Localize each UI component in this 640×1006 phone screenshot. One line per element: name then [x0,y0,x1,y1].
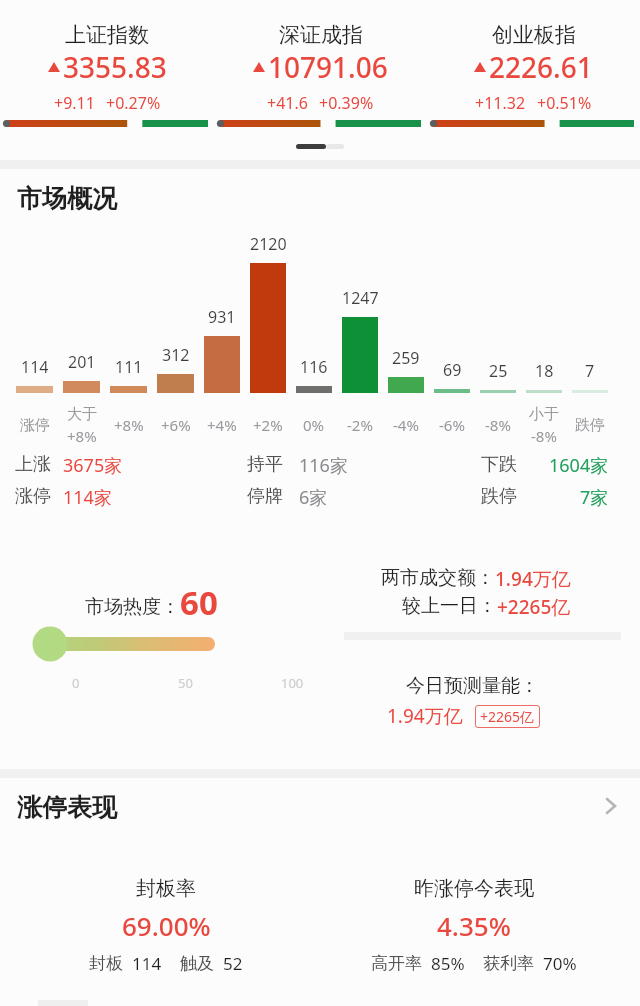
staticText: 深证成指 [279,22,363,48]
staticText: 52 [223,952,243,975]
staticText: +2% [253,415,283,435]
staticText: 50 [178,674,193,692]
staticText: 持平 [247,453,283,476]
staticText: 69 [443,359,462,381]
staticText: 大于 [67,405,97,424]
staticText: -8% [531,426,557,446]
button[interactable]: 上证指数 [0,0,214,135]
staticText: 3675家 [63,453,123,477]
staticText: 1247 [342,287,379,309]
staticText: +2265亿 [480,707,535,726]
staticText: 两市成交额： [381,566,495,590]
staticText: 封板率 [136,876,196,901]
staticText: 上证指数 [65,22,149,48]
staticText: 0 [72,674,80,692]
staticText: 创业板指 [492,22,576,48]
staticText: 69.00% [122,908,211,943]
staticText: 高开率 [371,953,422,974]
staticText: 7家 [580,485,609,509]
staticText: +9.11 [54,92,95,114]
staticText: +6% [161,415,191,435]
staticText: 较上一日： [402,594,497,618]
button[interactable]: 涨停表现 [0,778,640,834]
staticText: +0.51% [537,92,592,114]
staticText: 259 [392,347,420,369]
staticText: 跌停 [575,416,605,435]
staticText: 涨停表现 [17,792,117,823]
staticText: +2265亿 [497,594,571,620]
staticText: 7 [585,360,595,382]
staticText: 停牌 [247,485,283,508]
staticText: 1.94万亿 [495,566,571,592]
staticText: 获利率 [483,953,534,974]
staticText: 116 [300,356,328,378]
staticText: +41.6 [267,92,308,114]
staticText: +11.32 [475,92,526,114]
staticText: 下跌 [481,453,517,476]
staticText: -4% [393,415,419,435]
staticText: 1604家 [549,453,609,477]
staticText: 100 [281,674,304,692]
staticText: 85% [431,952,465,975]
staticText: -2% [347,415,373,435]
staticText: 2226.61 [489,48,593,86]
staticText: 2120 [250,233,287,255]
staticText: 市场概况 [17,183,117,214]
staticText: +8% [114,415,144,435]
staticText: 25 [489,360,508,382]
staticText: 今日预测量能： [406,674,539,698]
staticText: -6% [439,415,465,435]
staticText: 市场热度： [85,595,180,619]
staticText: 10791.06 [268,48,388,86]
staticText: 114家 [63,485,112,509]
staticText: 涨停 [15,485,51,508]
button[interactable]: 深证成指 [214,0,427,135]
staticText: 昨涨停今表现 [414,876,534,901]
staticText: 114 [21,356,49,378]
staticText: 931 [208,306,236,328]
staticText: 跌停 [481,485,517,508]
staticText: -8% [485,415,511,435]
staticText: 上涨 [15,453,51,476]
staticText: 4.35% [437,908,511,943]
staticText: 18 [535,360,554,382]
staticText: 6家 [299,485,328,509]
staticText: 封板 [89,953,123,974]
staticText: 0% [303,415,325,435]
other: 查看更多涨停表现 [604,796,618,816]
staticText: +0.27% [106,92,161,114]
staticText: 312 [162,344,190,366]
button[interactable]: 创业板指 [427,0,640,135]
staticText: 70% [543,952,577,975]
staticText: 116家 [299,453,348,477]
staticText: +4% [207,415,237,435]
staticText: 114 [132,952,162,975]
staticText: 111 [115,356,143,378]
staticText: 涨停 [20,416,50,435]
staticText: 触及 [180,953,214,974]
staticText: 1.94万亿 [387,703,463,729]
staticText: 201 [68,351,96,373]
staticText: 小于 [529,405,559,424]
staticText: 3355.83 [63,48,167,86]
staticText: +8% [67,426,97,446]
staticText: +0.39% [319,92,374,114]
staticText: 60 [180,580,218,625]
